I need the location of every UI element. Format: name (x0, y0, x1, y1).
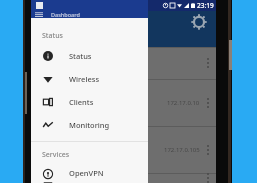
staticText: OpenVPN (69, 168, 104, 178)
staticText: Monitoring (69, 120, 110, 130)
staticText: Status (69, 51, 92, 61)
staticText: Status (42, 31, 64, 41)
staticText: Dashboard (51, 11, 80, 18)
button[interactable]: Status (31, 44, 148, 67)
staticText: 172.17.0.105 (164, 146, 200, 154)
staticText: Wireless (69, 74, 100, 84)
button[interactable]: Settings (192, 15, 206, 29)
button[interactable]: OpenVPN (31, 163, 148, 183)
button[interactable]: 172.17.0.105 (31, 126, 216, 173)
staticText: Clients (69, 97, 94, 107)
staticText: 172.17.0.10 (167, 99, 200, 107)
staticText: 23:19 (197, 1, 214, 10)
button[interactable] (31, 173, 216, 183)
button[interactable]: Wireless (31, 67, 148, 90)
button[interactable] (31, 47, 216, 79)
button[interactable]: Menu (35, 12, 43, 17)
staticText: Services (42, 150, 70, 160)
button[interactable]: 172.17.0.10 (31, 79, 216, 126)
button[interactable]: Monitoring (31, 113, 148, 136)
button[interactable]: Clients (31, 90, 148, 113)
